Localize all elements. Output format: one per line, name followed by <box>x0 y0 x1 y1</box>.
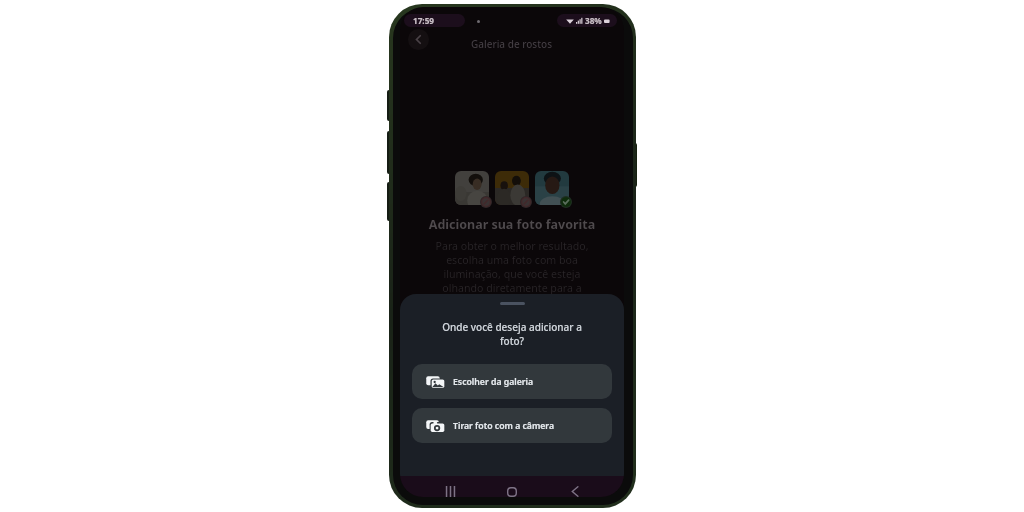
staticText: Onde você deseja adicionar a foto? <box>400 320 624 348</box>
staticText: Galeria de rostos <box>471 37 553 51</box>
button[interactable]: Tirar foto com a câmera <box>412 408 612 443</box>
button[interactable]: Recent apps <box>437 481 463 497</box>
staticText: 17:59 <box>413 15 435 26</box>
button[interactable]: Escolher da galeria <box>412 364 612 399</box>
button[interactable]: Home <box>499 481 525 497</box>
button[interactable]: Back <box>408 29 429 50</box>
staticText: Adicionar sua foto favorita <box>400 216 624 233</box>
staticText: Para obter o melhor resultado, escolha u… <box>400 239 624 309</box>
staticText: Tirar foto com a câmera <box>453 420 555 432</box>
button[interactable]: Back <box>562 481 588 497</box>
staticText: Escolher da galeria <box>453 376 534 388</box>
staticText: 38% <box>585 15 602 26</box>
